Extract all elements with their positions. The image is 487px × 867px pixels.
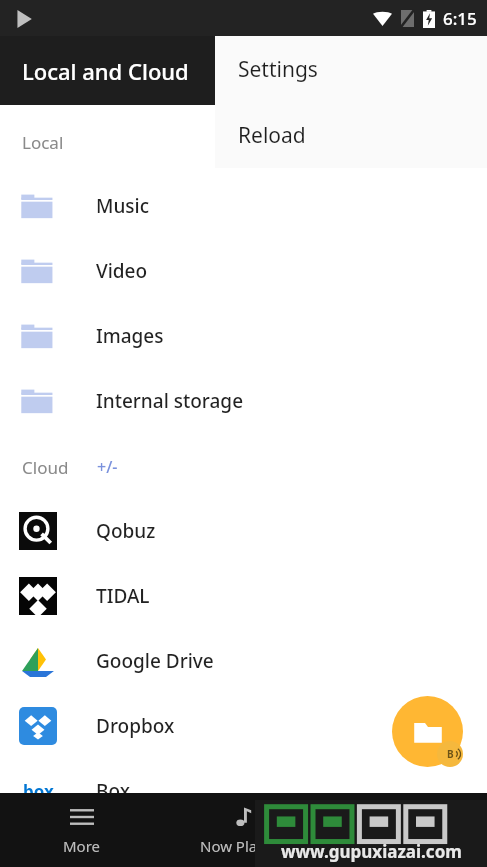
button[interactable] <box>0 304 487 368</box>
staticText: Google Drive <box>96 648 214 674</box>
staticText: +/- <box>97 456 118 478</box>
button[interactable] <box>0 694 487 758</box>
staticText: Qobuz <box>96 518 156 544</box>
button[interactable]: Settings <box>215 36 487 102</box>
staticText: Now Playing <box>200 836 288 856</box>
staticText: Music <box>96 193 150 219</box>
button[interactable] <box>0 174 487 238</box>
staticText: More <box>63 836 101 856</box>
button[interactable] <box>0 564 487 628</box>
button[interactable] <box>0 499 487 563</box>
staticText: Video <box>96 258 148 284</box>
button[interactable]: +/- <box>94 454 121 480</box>
button[interactable]: Add folder <box>392 696 463 767</box>
staticText: 6:15 <box>443 7 477 30</box>
staticText: www.gupuxiazai.com <box>281 840 462 863</box>
button[interactable]: Now Playing <box>163 793 325 867</box>
button[interactable] <box>0 629 487 693</box>
button[interactable]: Reload <box>215 102 487 168</box>
staticText: Box <box>96 778 130 804</box>
button[interactable]: More <box>0 793 163 867</box>
staticText: TIDAL <box>96 583 150 609</box>
staticText: box <box>23 780 54 803</box>
staticText: Dropbox <box>96 713 175 739</box>
staticText: Reload <box>238 121 306 150</box>
staticText: Internal storage <box>96 388 244 414</box>
button[interactable] <box>0 369 487 433</box>
staticText: Local <box>22 131 64 154</box>
button[interactable] <box>0 239 487 303</box>
staticText: Local and Cloud <box>22 56 189 86</box>
staticText: B <box>447 747 454 761</box>
button[interactable]: box <box>0 759 487 823</box>
staticText: Settings <box>238 55 318 84</box>
staticText: Cloud <box>22 456 69 479</box>
staticText: Images <box>96 323 164 349</box>
